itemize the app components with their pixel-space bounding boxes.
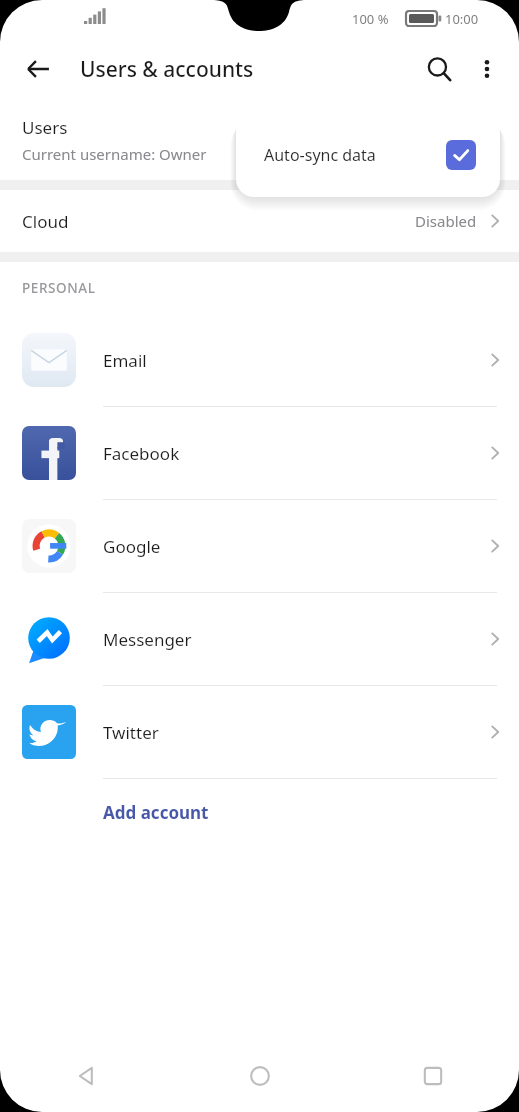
button[interactable]: Google (0, 500, 519, 592)
staticText: 100 % (352, 10, 389, 28)
button[interactable]: Users (0, 100, 519, 180)
button[interactable]: Facebook (0, 407, 519, 499)
button[interactable]: Back (14, 45, 62, 93)
button[interactable]: Back (0, 1040, 173, 1112)
button[interactable]: Cloud (0, 190, 519, 252)
button[interactable]: Home (173, 1040, 346, 1112)
staticText: PERSONAL (22, 279, 96, 297)
button[interactable]: Add account (0, 779, 519, 845)
staticText: Disabled (415, 211, 477, 231)
staticText: Twitter (103, 721, 159, 744)
button[interactable]: Email (0, 314, 519, 406)
staticText: Facebook (103, 442, 180, 465)
button[interactable]: Messenger (0, 593, 519, 685)
staticText: 10:00 (445, 10, 479, 28)
staticText: Google (103, 535, 161, 558)
staticText: Users & accounts (80, 55, 254, 84)
button[interactable]: Search (415, 45, 463, 93)
button[interactable]: Twitter (0, 686, 519, 778)
button[interactable]: More options (463, 45, 511, 93)
staticText: Current username: Owner (22, 144, 207, 164)
staticText: Cloud (22, 210, 69, 233)
button[interactable]: Auto-sync data (236, 113, 500, 197)
staticText: Add account (103, 801, 209, 824)
staticText: Email (103, 349, 147, 372)
staticText: Users (22, 116, 68, 139)
button[interactable]: Recents (346, 1040, 519, 1112)
staticText: Auto-sync data (264, 144, 376, 166)
staticText: Messenger (103, 628, 192, 651)
